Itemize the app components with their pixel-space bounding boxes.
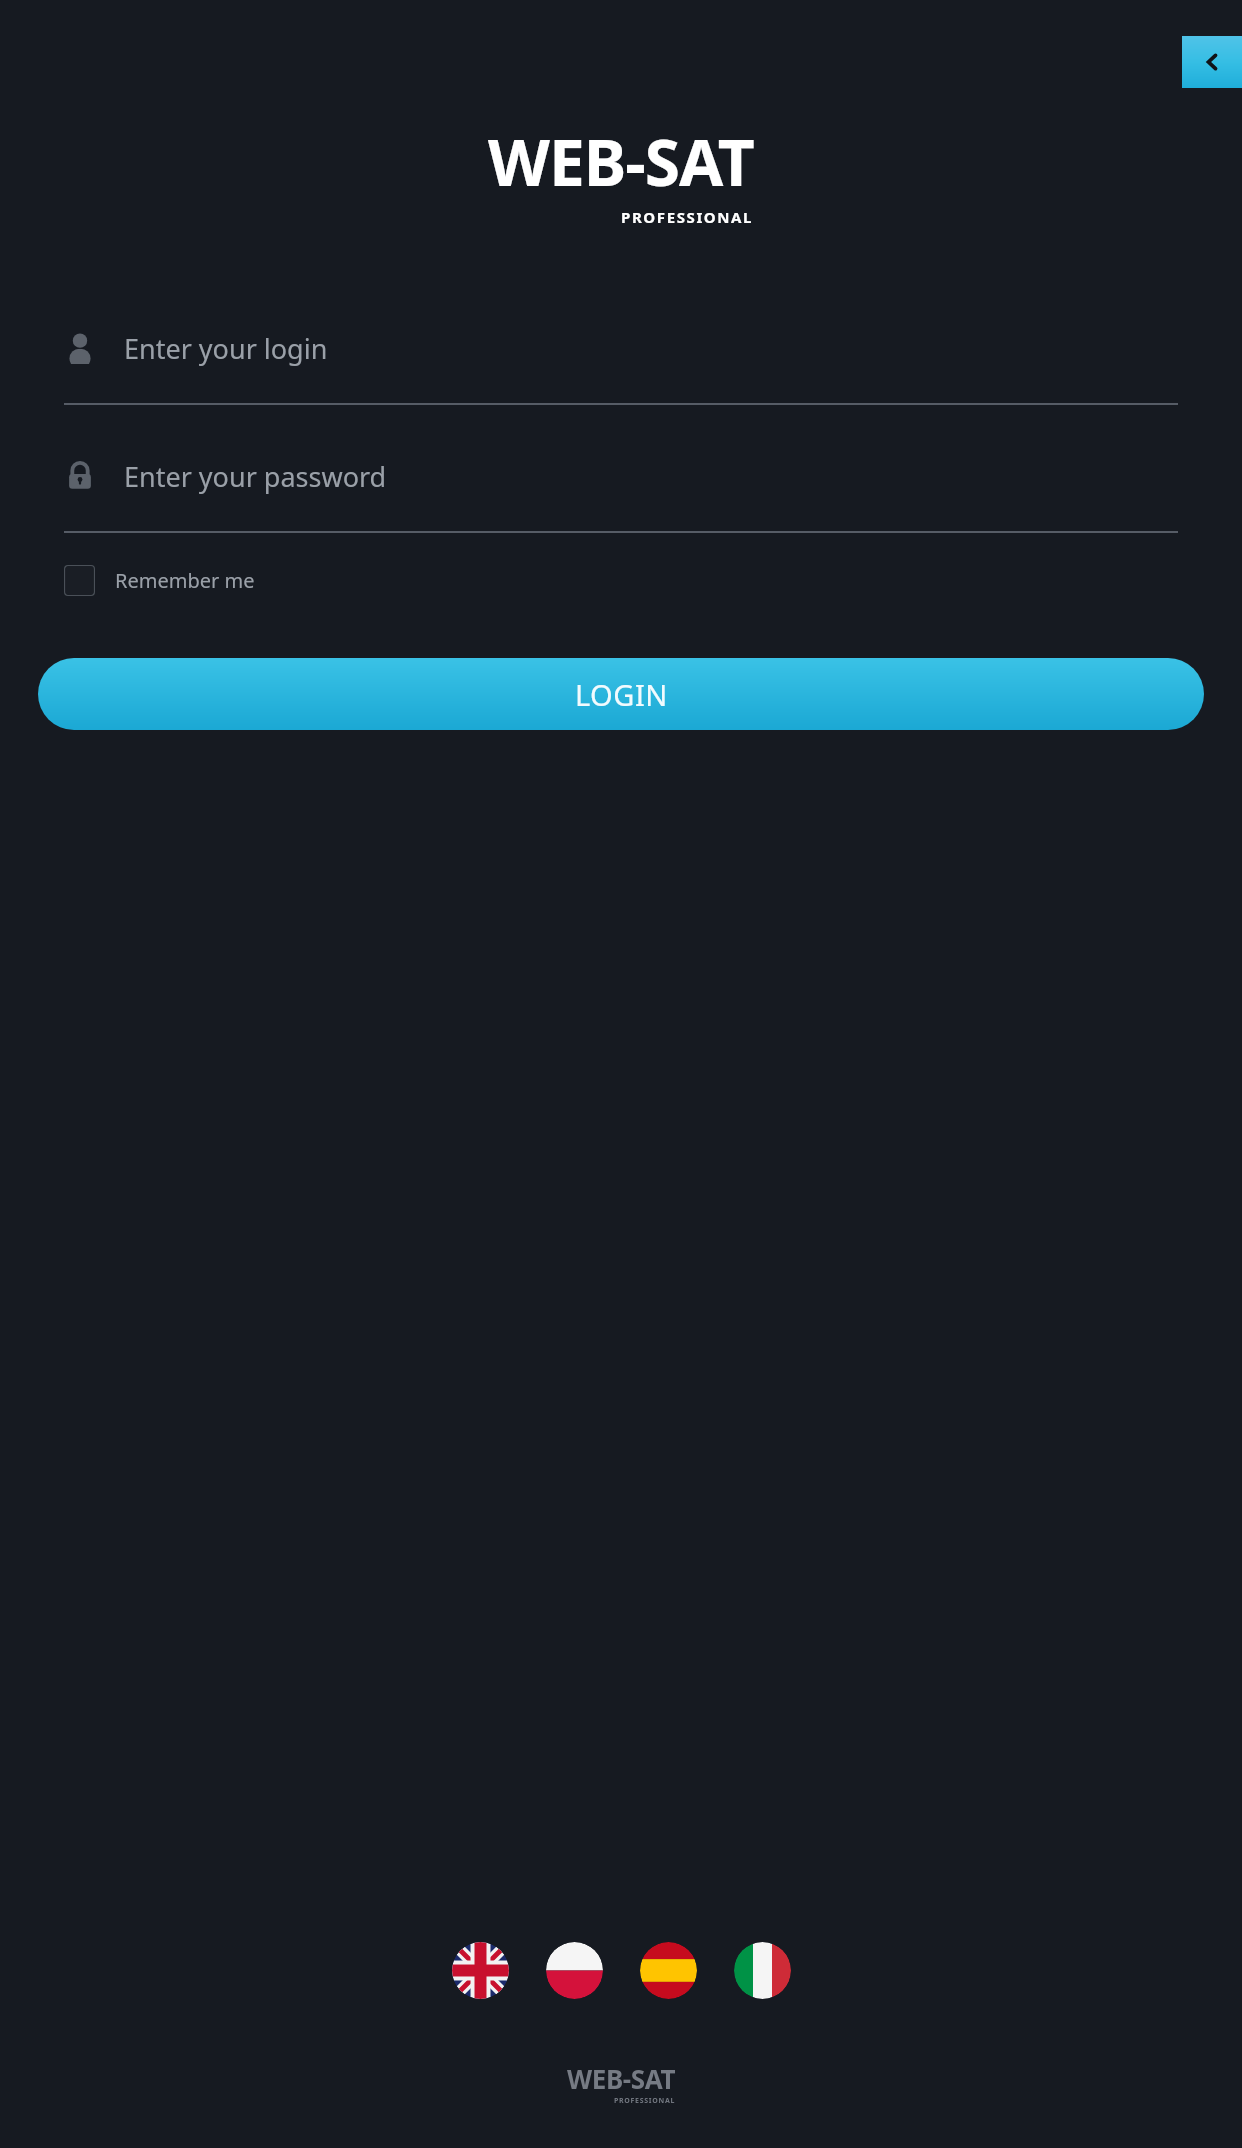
button[interactable]: Back [1182, 36, 1242, 88]
staticText: LOGIN [575, 675, 668, 714]
button[interactable]: Remember me [64, 565, 1178, 596]
staticText: WEB-SAT [488, 118, 754, 205]
button[interactable]: LOGIN [38, 658, 1204, 730]
button[interactable]: Espanol [640, 1942, 697, 1999]
staticText: WEB-SAT [567, 2061, 676, 2096]
button[interactable]: English [452, 1942, 509, 1999]
staticText: PROFESSIONAL [621, 207, 754, 227]
staticText: Remember me [115, 567, 255, 594]
button[interactable]: Enter your password [64, 443, 1178, 533]
staticText: Enter your login [124, 330, 328, 367]
button[interactable]: Enter your login [64, 315, 1178, 405]
button[interactable]: Italiano [734, 1942, 791, 1999]
staticText: PROFESSIONAL [614, 2096, 676, 2106]
staticText: Enter your password [124, 458, 387, 495]
button[interactable]: Polski [546, 1942, 603, 1999]
